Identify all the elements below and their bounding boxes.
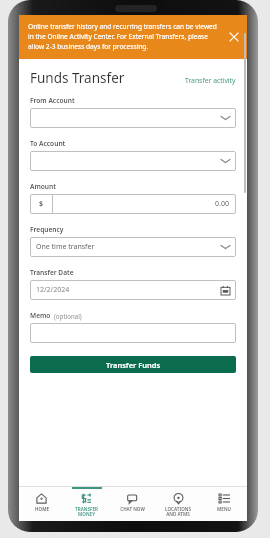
staticText: 12/2/2024 bbox=[36, 285, 70, 295]
staticText: $ bbox=[39, 199, 44, 209]
staticText: Transfer Funds bbox=[106, 360, 161, 370]
button[interactable] bbox=[30, 151, 236, 171]
other: Locations and ATMs bbox=[173, 493, 184, 504]
staticText: 0.00 bbox=[215, 199, 229, 209]
staticText: MENU bbox=[217, 506, 231, 512]
button[interactable]: Home bbox=[19, 487, 64, 521]
staticText: HOME bbox=[35, 506, 49, 512]
button[interactable]: Chat Now bbox=[109, 487, 155, 521]
staticText: LOCATIONS AND ATMS bbox=[165, 506, 191, 518]
staticText: Amount bbox=[30, 182, 56, 191]
staticText: From Account bbox=[30, 96, 75, 105]
staticText: Transfer activity bbox=[185, 76, 236, 85]
button[interactable] bbox=[30, 323, 236, 343]
staticText: CHAT NOW bbox=[120, 506, 145, 512]
staticText: Transfer Date bbox=[30, 268, 74, 277]
staticText: One time transfer bbox=[36, 242, 95, 252]
staticText: Online transfer history and recurring tr… bbox=[28, 22, 221, 51]
button[interactable]: $ bbox=[30, 194, 236, 214]
other: Menu bbox=[219, 493, 230, 504]
button[interactable]: 12/2/2024 bbox=[30, 280, 236, 300]
button[interactable]: Transfer Money bbox=[64, 487, 109, 521]
other: Home bbox=[36, 493, 47, 504]
button[interactable]: One time transfer bbox=[30, 237, 236, 257]
staticText: (optional) bbox=[54, 312, 82, 320]
button[interactable]: Transfer activity bbox=[185, 76, 236, 87]
button[interactable]: Transfer Funds bbox=[30, 356, 236, 373]
other: Chat Now bbox=[127, 493, 138, 504]
staticText: Memo bbox=[30, 311, 51, 320]
button[interactable]: Menu bbox=[201, 487, 247, 521]
button[interactable]: Close bbox=[225, 28, 243, 46]
button[interactable] bbox=[30, 108, 236, 128]
staticText: Funds Transfer bbox=[30, 69, 125, 87]
staticText: To Account bbox=[30, 139, 66, 148]
other: Transfer Money bbox=[81, 493, 92, 504]
staticText: TRANSFER MONEY bbox=[75, 506, 98, 518]
staticText: Frequency bbox=[30, 225, 64, 234]
button[interactable]: Locations and ATMs bbox=[155, 487, 201, 521]
